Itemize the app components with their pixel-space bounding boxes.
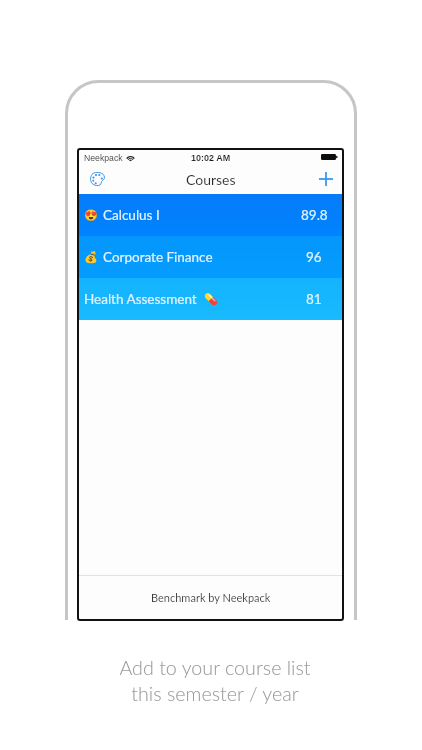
staticText: 96 xyxy=(306,249,322,265)
button[interactable]: Benchmark by Neekpack xyxy=(79,576,342,619)
staticText: 😍 xyxy=(84,209,98,222)
staticText: Neekpack xyxy=(84,153,123,163)
staticText: Benchmark by Neekpack xyxy=(151,591,271,604)
staticText: 81 xyxy=(306,291,322,307)
staticText: Add to your course list xyxy=(119,656,311,680)
staticText: this semester / year xyxy=(131,682,299,706)
button[interactable]: 😍 xyxy=(79,194,342,236)
staticText: 10:02 AM xyxy=(191,153,231,163)
button[interactable]: 💰 xyxy=(79,236,342,278)
button[interactable]: Themes xyxy=(85,167,109,191)
staticText: 💊 xyxy=(204,293,218,306)
staticText: 89.8 xyxy=(301,207,328,223)
staticText: Corporate Finance xyxy=(103,249,213,265)
button[interactable]: Health Assessment xyxy=(79,278,342,320)
button[interactable]: Add course xyxy=(314,167,338,191)
staticText: Courses xyxy=(186,171,236,188)
staticText: Calculus I xyxy=(103,207,160,223)
staticText: Health Assessment xyxy=(84,291,197,307)
staticText: 💰 xyxy=(84,251,98,264)
